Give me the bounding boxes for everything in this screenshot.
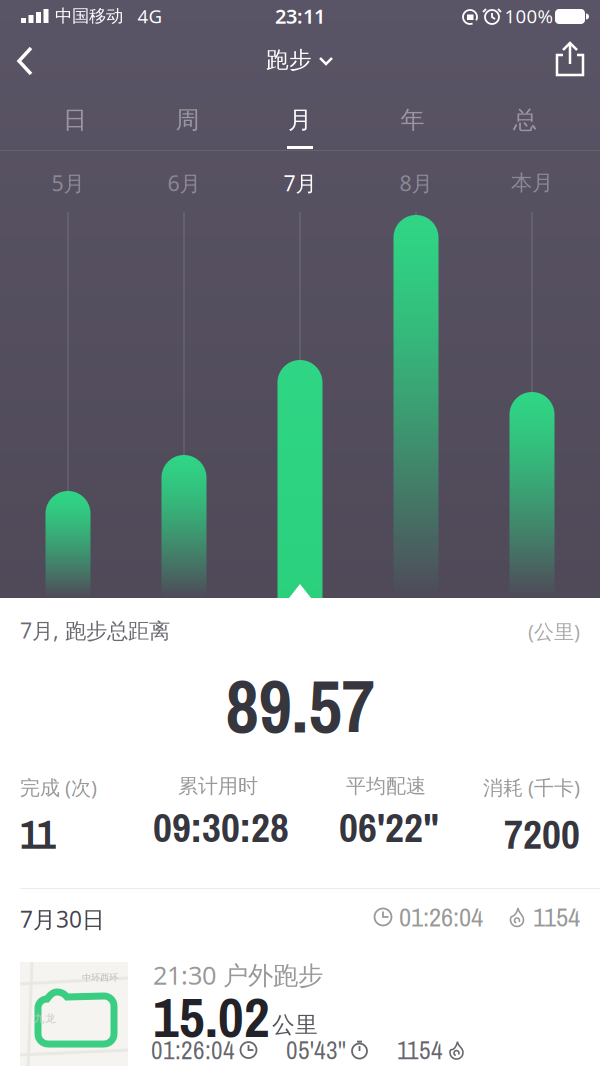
staticText: 21:30 户外跑步 <box>153 958 323 992</box>
button[interactable]: 5月 <box>45 491 90 598</box>
staticText: 01:26:04 <box>399 899 483 935</box>
staticText: 平均配速 <box>346 774 426 798</box>
staticText: 100% <box>504 4 553 28</box>
staticText: 4G <box>137 4 162 28</box>
staticText: 09:30:28 <box>153 799 289 855</box>
staticText: 11 <box>20 806 56 862</box>
staticText: 中国移动 <box>55 5 123 27</box>
button[interactable]: 总 <box>475 94 575 146</box>
button[interactable]: 6月 <box>161 455 206 598</box>
staticText: 1154 <box>533 899 580 935</box>
staticText: 01:26:04 <box>151 1033 235 1066</box>
button[interactable]: 跑步 <box>229 36 359 86</box>
staticText: 总 <box>513 105 537 135</box>
staticText: (公里) <box>528 618 580 645</box>
staticText: 8月 <box>399 169 432 197</box>
staticText: 累计用时 <box>178 774 258 798</box>
staticText: 完成 (次) <box>20 774 97 801</box>
staticText: 跑步 <box>266 46 312 74</box>
staticText: 7月, 跑步总距离 <box>20 616 170 644</box>
button[interactable]: 7月 <box>277 360 322 598</box>
staticText: 九龙 <box>34 1012 56 1025</box>
staticText: 周 <box>175 105 199 135</box>
button[interactable]: 8月 <box>393 215 438 598</box>
button[interactable]: 日 <box>25 94 125 146</box>
staticText: 公里 <box>272 1011 318 1039</box>
button[interactable]: 周 <box>137 94 237 146</box>
button[interactable]: Share <box>554 42 586 78</box>
staticText: 23:11 <box>275 3 325 29</box>
staticText: 年 <box>400 105 424 135</box>
button[interactable]: 年 <box>362 94 462 146</box>
staticText: 7月 <box>283 169 316 197</box>
staticText: 6月 <box>167 169 200 197</box>
staticText: 7月30日 <box>20 904 105 934</box>
staticText: 中环西环 <box>82 972 118 983</box>
button[interactable]: 本月 <box>509 392 554 598</box>
button[interactable]: 户外跑步 15.02 公里 <box>0 940 600 1066</box>
staticText: 5月 <box>51 169 84 197</box>
staticText: 日 <box>63 105 87 135</box>
staticText: 本月 <box>511 170 553 196</box>
staticText: 月 <box>288 105 312 135</box>
staticText: 06'22" <box>339 799 439 855</box>
staticText: 89.57 <box>225 657 374 755</box>
staticText: 05'43'' <box>286 1033 346 1066</box>
staticText: 1154 <box>397 1033 443 1066</box>
staticText: 7200 <box>504 806 580 862</box>
staticText: 消耗 (千卡) <box>483 774 580 801</box>
button[interactable]: Back <box>6 39 50 83</box>
staticText: 15.02 <box>153 979 270 1054</box>
button[interactable]: 月 <box>250 94 350 146</box>
